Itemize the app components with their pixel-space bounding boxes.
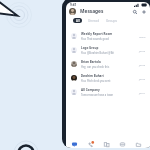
staticText: Aug 3 <box>139 35 146 38</box>
staticText: Brian Bartola <box>81 60 101 64</box>
button[interactable]: Chats <box>66 140 82 148</box>
button[interactable]: New message <box>140 8 147 15</box>
staticText: Unread <box>88 19 100 23</box>
button[interactable]: Teams <box>98 140 114 148</box>
staticText: You: That sounds good <box>81 37 109 41</box>
staticText: Jul 29 <box>139 49 146 52</box>
staticText: Tomorrow we have a town <box>81 93 114 97</box>
staticText: Hey, can you check this <box>81 65 110 69</box>
staticText: Logo Group <box>81 46 99 50</box>
staticText: Groups <box>106 19 117 23</box>
staticText: 9:41 <box>70 3 77 7</box>
button[interactable]: Groups <box>105 18 118 23</box>
button[interactable]: Unread <box>87 18 101 23</box>
staticText: You: Pitch deck you sent <box>81 79 111 83</box>
staticText: Jul 21 <box>139 91 146 94</box>
staticText: Weekly Report Room <box>81 32 113 36</box>
staticText: You: @Ibrahim Buhari @Bri <box>81 51 115 55</box>
staticText: Ibrahim Buhari <box>81 74 104 78</box>
staticText: Messages <box>80 8 104 15</box>
button[interactable]: Ibrahim Buhari <box>66 71 150 85</box>
button[interactable]: All Company <box>66 85 150 99</box>
button[interactable]: Calls <box>82 140 98 148</box>
staticText: All <box>76 19 80 23</box>
button[interactable]: Calendar <box>114 140 130 148</box>
staticText: Jul 26 <box>139 77 146 80</box>
staticText: All Company <box>81 88 100 92</box>
button[interactable]: Weekly Report Room <box>66 29 150 43</box>
staticText: Jul 28 <box>139 63 146 66</box>
button[interactable]: Brian Bartola <box>66 57 150 71</box>
button[interactable]: Logo Group <box>66 43 150 57</box>
button[interactable]: Search <box>131 8 138 15</box>
button[interactable]: All <box>73 18 82 23</box>
button[interactable]: Profile <box>69 8 76 15</box>
button[interactable]: Files <box>130 140 146 148</box>
